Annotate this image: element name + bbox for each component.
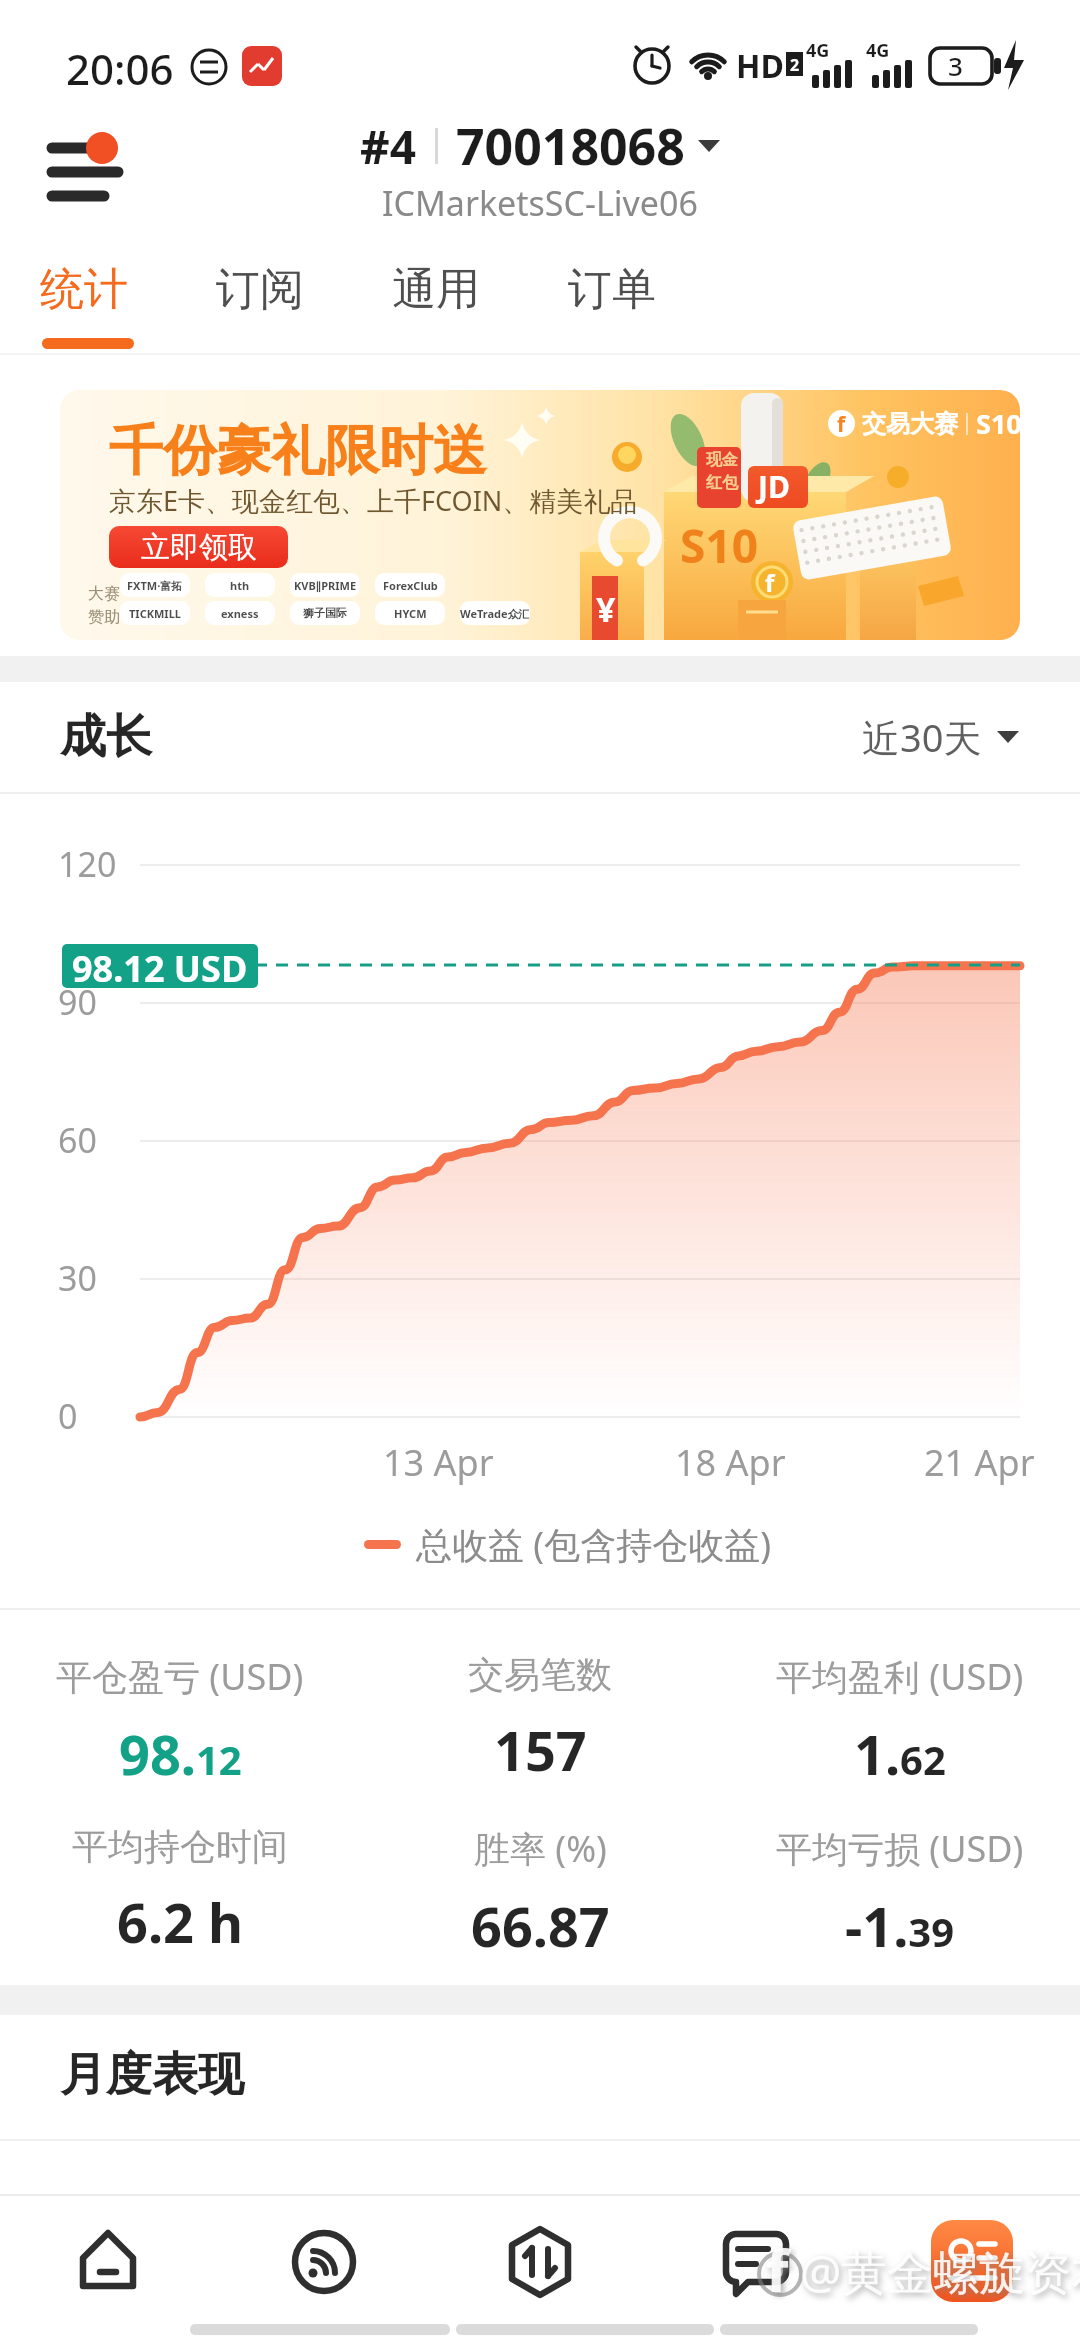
staticText: @黄金螺旋资本 xyxy=(800,2240,1080,2303)
button[interactable]: 近30天 xyxy=(862,711,1020,763)
button[interactable]: 订阅 xyxy=(216,262,304,317)
button[interactable] xyxy=(44,130,130,208)
staticText: 平均亏损 (USD) xyxy=(776,1824,1024,1873)
staticText: f xyxy=(766,2230,789,2309)
staticText: 大赛 赞助 xyxy=(88,584,120,627)
staticText: 6.2 h xyxy=(117,1885,244,1954)
staticText: 京东E卡、现金红包、上千FCOIN、精美礼品 xyxy=(109,482,638,519)
button[interactable]: 通用 xyxy=(392,262,480,317)
staticText: 66.87 xyxy=(471,1889,610,1954)
button[interactable] xyxy=(0,2196,216,2340)
staticText: 4G xyxy=(866,38,890,63)
staticText: S10 xyxy=(976,405,1020,442)
staticText: 13 Apr xyxy=(383,1438,494,1487)
staticText: 18 Apr xyxy=(675,1438,786,1487)
staticText: f xyxy=(765,566,775,599)
staticText: 2 xyxy=(790,54,800,76)
staticText: 120 xyxy=(58,841,117,887)
staticText: 成长 xyxy=(60,708,152,766)
staticText: WeTrade众汇 xyxy=(460,606,530,621)
staticText: S10 xyxy=(680,514,758,577)
staticText: 平均持仓时间 xyxy=(72,1824,288,1869)
staticText: 交易大赛 xyxy=(862,409,958,439)
button[interactable] xyxy=(216,2196,432,2340)
button[interactable] xyxy=(648,2196,864,2340)
button[interactable]: #4 xyxy=(360,112,721,180)
button[interactable]: 立即领取 xyxy=(109,526,288,568)
staticText: 3 xyxy=(948,48,963,83)
staticText: 平均盈利 (USD) xyxy=(776,1652,1024,1701)
button[interactable]: S10 xyxy=(60,390,1020,640)
staticText: 1.62 xyxy=(854,1717,946,1782)
staticText: 157 xyxy=(494,1713,587,1782)
staticText: ¥ xyxy=(596,586,616,632)
staticText: JD xyxy=(758,466,790,507)
staticText: #4 xyxy=(360,115,417,178)
staticText: 胜率 (%) xyxy=(474,1824,607,1873)
staticText: 平仓盈亏 (USD) xyxy=(56,1652,304,1701)
staticText: -1.39 xyxy=(845,1889,955,1954)
staticText: 月度表现 xyxy=(60,2046,244,2104)
staticText: 98.12 xyxy=(119,1717,242,1782)
staticText: 60 xyxy=(58,1117,97,1163)
button[interactable]: 订单 xyxy=(568,262,656,317)
staticText: 30 xyxy=(58,1255,97,1301)
staticText: 千份豪礼限时送 xyxy=(109,417,487,485)
staticText: ForexClub xyxy=(383,578,438,593)
staticText: 交易笔数 xyxy=(468,1652,612,1697)
button[interactable] xyxy=(432,2196,648,2340)
staticText: hth xyxy=(230,578,250,593)
staticText: 21 Apr xyxy=(924,1438,1035,1487)
staticText: 20:06 xyxy=(66,40,174,97)
staticText: KVB∥PRIME xyxy=(294,578,357,593)
staticText: 0 xyxy=(58,1393,78,1439)
staticText: 90 xyxy=(58,979,97,1025)
staticText: 总收益 (包含持仓收益) xyxy=(416,1520,771,1569)
staticText: 现金 红包 xyxy=(706,450,738,493)
staticText: 狮子国际 xyxy=(303,606,347,620)
staticText: ICMarketsSC-Live06 xyxy=(382,180,698,226)
button[interactable] xyxy=(864,2196,1080,2340)
staticText: 近30天 xyxy=(862,711,982,763)
staticText: HD xyxy=(736,44,784,88)
staticText: FXTM·富拓 xyxy=(127,578,183,593)
staticText: TICKMILL xyxy=(129,606,181,621)
staticText: 70018068 xyxy=(456,112,685,180)
staticText: 98.12 USD xyxy=(72,944,248,988)
staticText: HYCM xyxy=(394,606,427,621)
staticText: f xyxy=(837,410,846,437)
button[interactable]: 统计 xyxy=(40,262,128,317)
staticText: 立即领取 xyxy=(141,529,257,566)
staticText: 4G xyxy=(806,38,830,63)
staticText: exness xyxy=(221,606,259,621)
